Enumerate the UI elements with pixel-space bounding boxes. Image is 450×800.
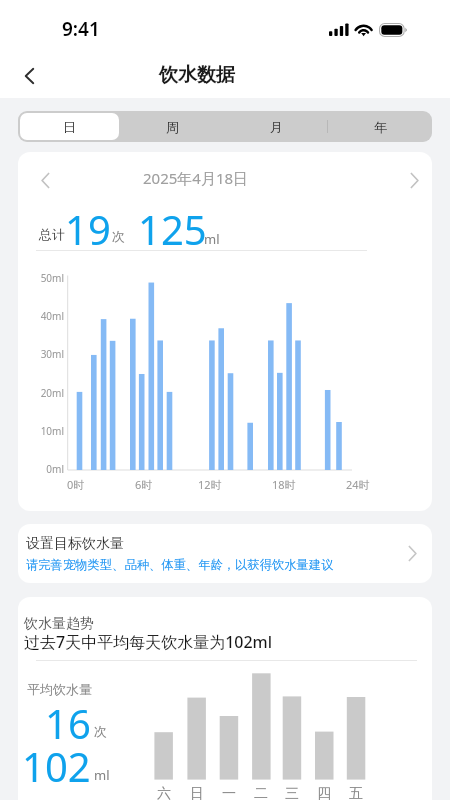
button[interactable]: 设置目标饮水量 — [18, 524, 432, 583]
staticText: 次 — [94, 723, 107, 739]
staticText: 50ml — [40, 271, 64, 285]
staticText: 102 — [22, 739, 91, 793]
button[interactable]: 周 — [123, 113, 222, 140]
staticText: 9:41 — [62, 16, 100, 42]
staticText: 10ml — [40, 424, 64, 438]
staticText: 30ml — [40, 347, 64, 361]
staticText: ml — [94, 766, 110, 784]
button[interactable]: Back — [8, 55, 50, 97]
staticText: 二 — [254, 785, 268, 800]
staticText: 总计 — [39, 226, 65, 242]
staticText: 20ml — [40, 386, 64, 400]
staticText: 18时 — [272, 477, 296, 492]
staticText: 饮水数据 — [159, 63, 235, 87]
staticText: 平均饮水量 — [27, 681, 92, 697]
staticText: 19 — [65, 202, 111, 256]
button[interactable]: Previous day — [29, 164, 61, 196]
staticText: 125 — [138, 202, 207, 256]
staticText: 五 — [349, 785, 363, 800]
staticText: 四 — [317, 785, 331, 800]
staticText: 六 — [157, 785, 171, 800]
staticText: 年 — [374, 119, 387, 135]
staticText: 12时 — [198, 477, 222, 492]
staticText: 周 — [166, 119, 179, 135]
staticText: 24时 — [346, 477, 370, 492]
staticText: 16 — [45, 696, 91, 750]
staticText: 月 — [270, 119, 283, 135]
staticText: ml — [204, 230, 220, 248]
staticText: 请完善宠物类型、品种、体重、年龄，以获得饮水量建议 — [26, 557, 334, 572]
staticText: 日 — [190, 785, 204, 800]
staticText: 三 — [285, 785, 299, 800]
button[interactable]: 日 — [20, 113, 119, 140]
staticText: 2025年4月18日 — [143, 168, 249, 188]
button[interactable]: 年 — [330, 113, 430, 140]
staticText: 6时 — [135, 477, 153, 492]
staticText: 日 — [63, 119, 76, 135]
staticText: 0ml — [46, 462, 64, 476]
button[interactable]: 月 — [226, 113, 326, 140]
staticText: 0时 — [67, 477, 85, 492]
staticText: 饮水量趋势 — [24, 615, 94, 633]
button[interactable]: Next day — [398, 164, 430, 196]
staticText: 40ml — [40, 309, 64, 323]
staticText: 设置目标饮水量 — [26, 535, 124, 553]
staticText: 过去7天中平均每天饮水量为102ml — [24, 631, 273, 653]
staticText: 一 — [222, 785, 236, 800]
staticText: 次 — [112, 228, 125, 244]
